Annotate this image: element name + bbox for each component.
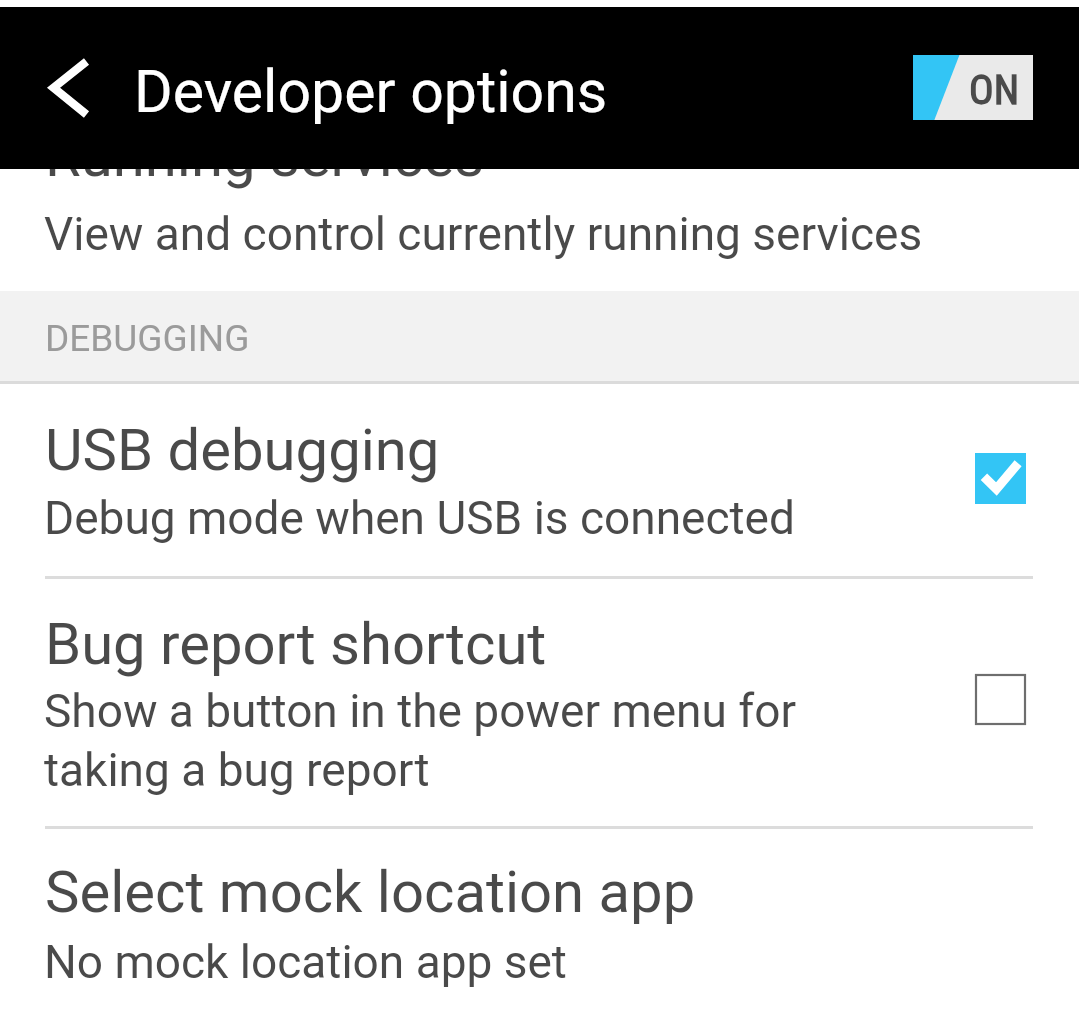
staticText: USB debugging <box>45 418 440 484</box>
staticText: Debug mode when USB is connected <box>44 487 795 546</box>
button[interactable]: USB debugging checkbox, checked <box>975 453 1026 504</box>
staticText: Select mock location app <box>45 860 696 926</box>
staticText: Developer options <box>134 57 608 126</box>
staticText: Show a button in the power menu for taki… <box>44 680 797 798</box>
button[interactable]: Developer options on <box>913 55 1033 120</box>
staticText: ON <box>969 66 1020 114</box>
staticText: DEBUGGING <box>45 317 250 360</box>
staticText: Running services <box>45 124 484 190</box>
staticText: No mock location app set <box>44 931 567 990</box>
button[interactable]: Navigate up <box>20 41 114 133</box>
button[interactable]: Bug report shortcut checkbox, unchecked <box>975 674 1026 725</box>
button[interactable] <box>0 829 1079 1013</box>
button[interactable] <box>0 580 1079 826</box>
staticText: Bug report shortcut <box>45 612 547 678</box>
staticText: View and control currently running servi… <box>44 203 923 262</box>
button[interactable] <box>0 392 1079 576</box>
